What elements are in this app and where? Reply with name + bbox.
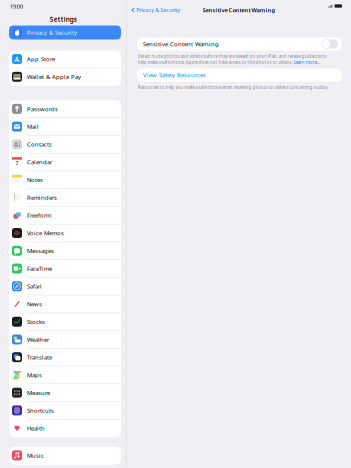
- button[interactable]: Contacts: [9, 136, 121, 153]
- staticText: Health: [27, 424, 45, 432]
- staticText: Music: [27, 451, 44, 459]
- staticText: Resources to help you make a safe choice…: [137, 84, 328, 90]
- staticText: Settings: [50, 15, 77, 24]
- button[interactable]: Weather: [9, 331, 121, 349]
- staticText: Sensitive Content Warning: [202, 6, 275, 14]
- button[interactable]: App Store: [9, 50, 121, 68]
- staticText: Stocks: [27, 318, 45, 326]
- staticText: Shortcuts: [27, 406, 54, 414]
- staticText: Mail: [27, 123, 39, 131]
- button[interactable]: Mail: [9, 118, 121, 136]
- button[interactable]: Shortcuts: [9, 402, 121, 420]
- button[interactable]: Measure: [9, 384, 121, 402]
- staticText: Measure: [27, 389, 50, 397]
- staticText: Calendar: [27, 158, 52, 166]
- staticText: Wallet & Apple Pay: [27, 73, 81, 81]
- button[interactable]: FaceTime: [9, 260, 121, 278]
- staticText: Detect nude photos and videos before the…: [137, 53, 326, 59]
- staticText: App Store: [27, 55, 55, 63]
- staticText: 7: [15, 160, 18, 167]
- button[interactable]: Music: [9, 447, 121, 464]
- staticText: Freeform: [27, 211, 51, 219]
- staticText: Voice Memos: [27, 229, 64, 237]
- staticText: Safari: [27, 282, 42, 290]
- staticText: Notes: [27, 176, 43, 184]
- button[interactable]: Health: [9, 420, 121, 437]
- staticText: Learn more…: [294, 59, 320, 65]
- button[interactable]: Maps: [9, 366, 121, 384]
- staticText: help make a safe choice. Apple does not …: [137, 59, 292, 65]
- button[interactable]: 7: [9, 153, 121, 171]
- button[interactable]: Passwords: [9, 100, 121, 118]
- staticText: FaceTime: [27, 264, 52, 272]
- staticText: Privacy & Security: [136, 6, 180, 14]
- button[interactable]: Notes: [9, 171, 121, 189]
- button[interactable]: Safari: [9, 278, 121, 295]
- staticText: Translate: [27, 353, 52, 361]
- staticText: Weather: [27, 335, 49, 343]
- staticText: Messages: [27, 247, 54, 255]
- button[interactable]: Privacy & Security: [127, 4, 183, 15]
- staticText: 19:00: [10, 3, 23, 10]
- staticText: Contacts: [27, 140, 52, 148]
- button[interactable]: Privacy & Security: [0, 25, 126, 39]
- button[interactable]: Messages: [9, 242, 121, 260]
- staticText: News: [27, 300, 42, 308]
- staticText: Maps: [27, 371, 42, 379]
- button[interactable]: News: [9, 295, 121, 313]
- staticText: Reminders: [27, 194, 57, 202]
- staticText: Sensitive Content Warning: [143, 40, 219, 48]
- button[interactable]: Sensitive Content Warning toggle: [321, 39, 338, 49]
- button[interactable]: Freeform: [9, 207, 121, 224]
- button[interactable]: Wallet & Apple Pay: [9, 68, 121, 86]
- button[interactable]: Voice Memos: [9, 224, 121, 242]
- button[interactable]: View Safety Resources: [127, 68, 351, 82]
- button[interactable]: Translate: [9, 349, 121, 366]
- staticText: Privacy & Security: [27, 28, 77, 36]
- button[interactable]: Stocks: [9, 313, 121, 331]
- button[interactable]: Reminders: [9, 189, 121, 207]
- button[interactable]: Learn more…: [294, 59, 320, 65]
- staticText: Passwords: [27, 105, 58, 113]
- staticText: View Safety Resources: [143, 71, 206, 79]
